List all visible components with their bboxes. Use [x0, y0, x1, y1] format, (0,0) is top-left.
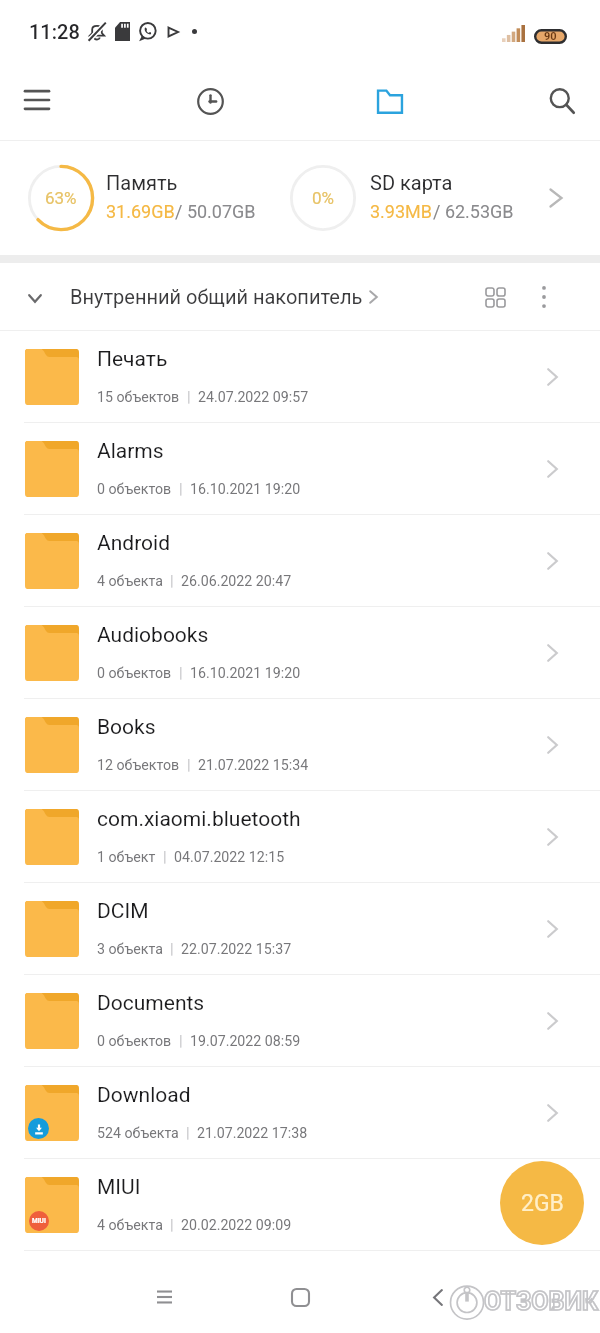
- button[interactable]: Recents: [135, 1268, 193, 1326]
- button[interactable]: Free up 2GB: [500, 1161, 584, 1245]
- staticText: 21.07.2022 17:38: [197, 1125, 308, 1142]
- staticText: |: [172, 665, 190, 682]
- staticText: |: [156, 849, 174, 866]
- staticText: 524 объекта: [97, 1125, 179, 1142]
- staticText: 15 объектов: [97, 389, 180, 406]
- staticText: Внутренний общий накопитель: [70, 285, 363, 308]
- staticText: Download: [97, 1083, 191, 1108]
- staticText: 26.06.2022 20:47: [181, 573, 292, 590]
- staticText: 0 объектов: [97, 481, 172, 498]
- button[interactable]: Audiobooks: [0, 607, 600, 698]
- button[interactable]: Files: [361, 72, 419, 130]
- staticText: 4 объекта: [97, 573, 163, 590]
- staticText: Alarms: [97, 439, 164, 464]
- staticText: / 62.53GB: [433, 201, 514, 222]
- staticText: 63%: [45, 188, 77, 208]
- staticText: |: [180, 389, 198, 406]
- button[interactable]: Android: [0, 515, 600, 606]
- button[interactable]: Documents: [0, 975, 600, 1066]
- button[interactable]: More options: [518, 271, 570, 323]
- staticText: com.xiaomi.bluetooth: [97, 807, 301, 832]
- staticText: Documents: [97, 991, 205, 1016]
- staticText: 0%: [312, 188, 335, 208]
- button[interactable]: 63%: [0, 141, 600, 255]
- staticText: |: [163, 1217, 181, 1234]
- staticText: Android: [97, 531, 170, 556]
- staticText: 31.69GB: [106, 201, 175, 222]
- staticText: 3 объекта: [97, 941, 163, 958]
- staticText: DCIM: [97, 899, 149, 924]
- button[interactable]: Download: [0, 1067, 600, 1158]
- button[interactable]: Home: [271, 1268, 329, 1326]
- staticText: Печать: [97, 347, 168, 372]
- staticText: |: [172, 481, 190, 498]
- button[interactable]: Внутренний общий накопитель: [0, 263, 378, 330]
- button[interactable]: Search: [533, 72, 591, 130]
- staticText: ОТЗОВИК: [484, 1287, 599, 1316]
- staticText: 0 объектов: [97, 665, 172, 682]
- staticText: 21.07.2022 15:34: [198, 757, 309, 774]
- button[interactable]: Alarms: [0, 423, 600, 514]
- staticText: 11:28: [29, 20, 80, 43]
- staticText: MIUI: [97, 1175, 141, 1200]
- staticText: Audiobooks: [97, 623, 209, 648]
- staticText: 12 объектов: [97, 757, 180, 774]
- staticText: 0 объектов: [97, 1033, 172, 1050]
- button[interactable]: DCIM: [0, 883, 600, 974]
- staticText: / 50.07GB: [175, 201, 256, 222]
- staticText: |: [163, 941, 181, 958]
- staticText: 24.07.2022 09:57: [198, 389, 309, 406]
- staticText: 4 объекта: [97, 1217, 163, 1234]
- staticText: 90: [544, 30, 557, 43]
- staticText: 19.07.2022 08:59: [190, 1033, 301, 1050]
- staticText: |: [180, 757, 198, 774]
- staticText: 1 объект: [97, 849, 156, 866]
- staticText: Books: [97, 715, 156, 740]
- button[interactable]: Back: [409, 1268, 467, 1326]
- button[interactable]: Recent files: [181, 72, 239, 130]
- button[interactable]: Печать: [0, 331, 600, 422]
- staticText: |: [172, 1033, 190, 1050]
- staticText: |: [163, 573, 181, 590]
- button[interactable]: Grid view: [469, 271, 521, 323]
- staticText: 22.07.2022 15:37: [181, 941, 292, 958]
- button[interactable]: com.xiaomi.bluetooth: [0, 791, 600, 882]
- button[interactable]: MIUI: [0, 1159, 600, 1250]
- button[interactable]: Menu: [8, 72, 66, 130]
- staticText: 16.10.2021 19:20: [190, 481, 301, 498]
- staticText: 16.10.2021 19:20: [190, 665, 301, 682]
- staticText: SD карта: [370, 171, 453, 194]
- staticText: 2GB: [521, 1190, 564, 1217]
- staticText: 3.93MB: [370, 201, 433, 222]
- staticText: 04.07.2022 12:15: [174, 849, 285, 866]
- staticText: Память: [106, 171, 178, 194]
- button[interactable]: Books: [0, 699, 600, 790]
- staticText: 20.02.2022 09:09: [181, 1217, 292, 1234]
- staticText: |: [179, 1125, 197, 1142]
- staticText: MIUI: [32, 1217, 46, 1225]
